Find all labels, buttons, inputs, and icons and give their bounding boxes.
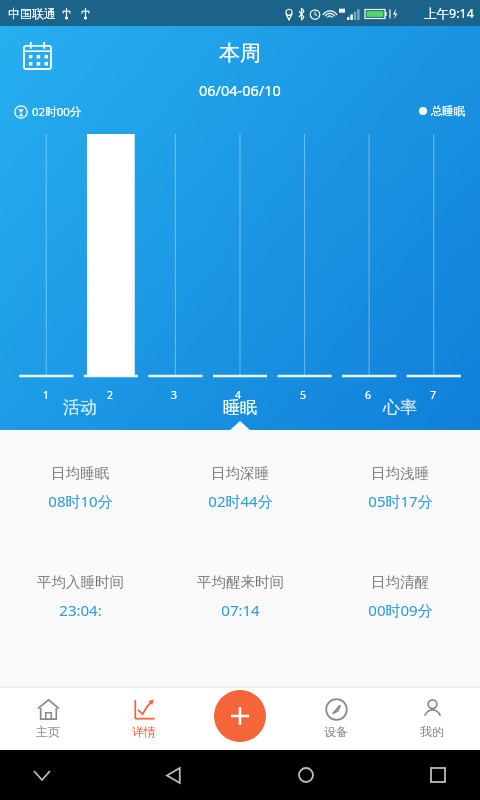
button[interactable]: 我的: [384, 687, 480, 750]
staticText: 7: [430, 388, 437, 402]
button[interactable]: 平均醒来时间: [160, 573, 320, 620]
staticText: 我的: [420, 724, 444, 739]
button[interactable]: Calendar: [20, 38, 54, 72]
staticText: 07:14: [221, 600, 260, 620]
button[interactable]: Home: [288, 757, 324, 793]
button[interactable]: 日均清醒: [320, 573, 480, 620]
staticText: 活动: [63, 397, 97, 418]
button[interactable]: 主页: [0, 687, 96, 750]
staticText: 详情: [132, 724, 156, 739]
staticText: 5: [300, 388, 307, 402]
staticText: 中国联通: [8, 6, 56, 21]
staticText: 平均醒来时间: [197, 573, 284, 591]
staticText: 4: [235, 388, 242, 402]
staticText: 06/04-06/10: [199, 80, 281, 100]
staticText: 1: [43, 388, 50, 402]
button[interactable]: 日均睡眠: [0, 464, 160, 511]
button[interactable]: 活动: [0, 384, 160, 430]
staticText: 00时09分: [368, 600, 433, 620]
button[interactable]: 设备: [288, 687, 384, 750]
staticText: 心率: [383, 397, 417, 418]
staticText: 05时17分: [368, 491, 433, 511]
staticText: 睡眠: [223, 397, 257, 418]
button[interactable]: 日均浅睡: [320, 464, 480, 511]
staticText: 上午9:14: [424, 5, 474, 22]
staticText: 日均睡眠: [51, 464, 109, 482]
staticText: 日均清醒: [371, 573, 429, 591]
button[interactable]: Back: [156, 757, 192, 793]
staticText: 主页: [36, 724, 60, 739]
button[interactable]: 平均入睡时间: [0, 573, 160, 620]
staticText: 本周: [219, 40, 261, 66]
staticText: 日均深睡: [211, 464, 269, 482]
staticText: 2: [107, 388, 114, 402]
staticText: 日均浅睡: [371, 464, 429, 482]
staticText: 6: [365, 388, 372, 402]
button[interactable]: 心率: [320, 384, 480, 430]
staticText: 3: [171, 388, 178, 402]
staticText: 设备: [324, 724, 348, 739]
button[interactable]: Hide: [24, 757, 60, 793]
button[interactable]: 睡眠: [160, 384, 320, 430]
staticText: 平均入睡时间: [37, 573, 124, 591]
staticText: 总睡眠: [431, 104, 466, 118]
button[interactable]: 日均深睡: [160, 464, 320, 511]
staticText: 23:04:: [59, 600, 102, 620]
staticText: 08时10分: [48, 491, 113, 511]
button[interactable]: 详情: [96, 687, 192, 750]
button[interactable]: Recents: [420, 757, 456, 793]
staticText: 02时44分: [208, 491, 273, 511]
staticText: 02时00分: [32, 104, 82, 120]
button[interactable]: Add: [214, 690, 266, 742]
